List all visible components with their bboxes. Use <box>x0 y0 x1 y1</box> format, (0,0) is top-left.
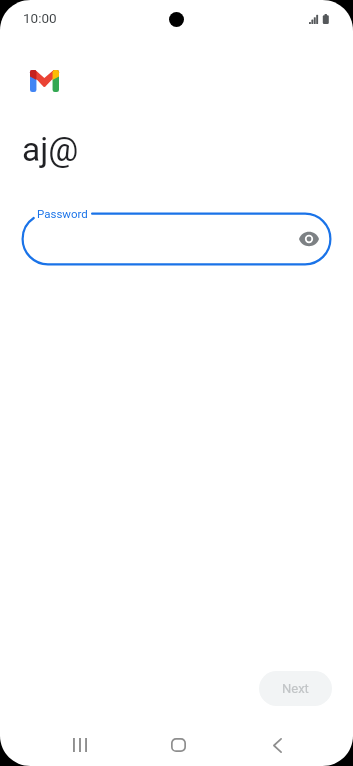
button[interactable]: Next <box>259 671 332 706</box>
staticText: Next <box>282 681 309 696</box>
button[interactable]: Password <box>21 212 332 266</box>
button[interactable]: Recent apps <box>55 721 104 766</box>
staticText: 10:00 <box>23 10 57 26</box>
staticText: Password <box>37 207 88 220</box>
staticText: aj@ <box>22 130 79 169</box>
button[interactable]: Back <box>253 721 302 766</box>
button[interactable]: Home <box>154 721 203 766</box>
button[interactable]: Show password <box>289 219 329 259</box>
